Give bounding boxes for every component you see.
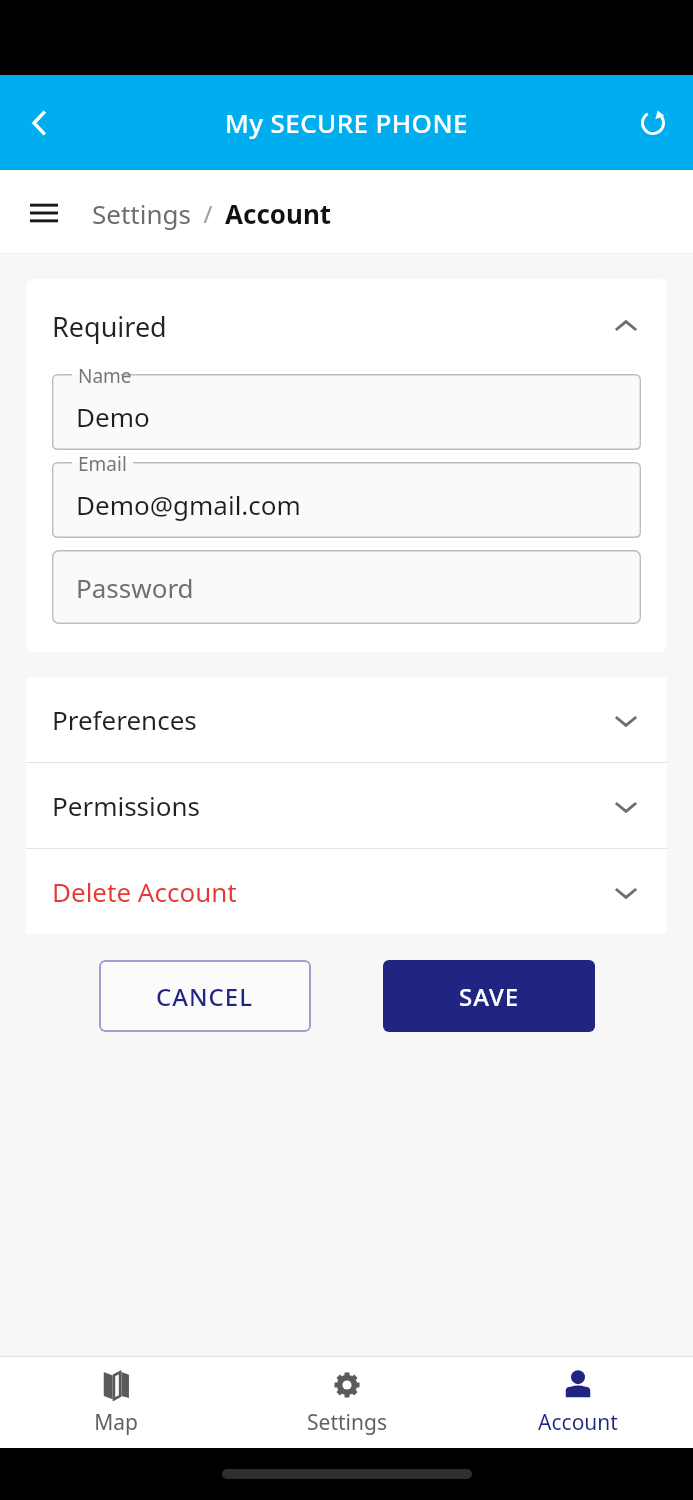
staticText: Permissions bbox=[52, 788, 611, 823]
staticText: Password bbox=[76, 570, 194, 605]
staticText: Settings bbox=[92, 196, 191, 231]
staticText: / bbox=[191, 197, 225, 230]
button[interactable]: Settings bbox=[231, 1356, 462, 1448]
staticText: Name bbox=[78, 363, 132, 389]
button[interactable]: CANCEL bbox=[99, 960, 311, 1032]
staticText: Account bbox=[225, 196, 332, 231]
button[interactable]: Back bbox=[14, 97, 66, 149]
button[interactable]: Password bbox=[52, 550, 641, 624]
staticText: SAVE bbox=[459, 980, 520, 1013]
button[interactable]: Delete Account bbox=[26, 849, 667, 934]
button[interactable]: Menu bbox=[20, 189, 68, 237]
staticText: Account bbox=[538, 1408, 618, 1437]
button[interactable]: Refresh bbox=[627, 97, 679, 149]
staticText: Map bbox=[94, 1408, 138, 1437]
staticText: Email bbox=[78, 451, 127, 477]
button[interactable]: Required bbox=[26, 279, 667, 374]
staticText: Settings bbox=[307, 1408, 387, 1437]
staticText: Preferences bbox=[52, 702, 611, 737]
button[interactable]: Email bbox=[52, 462, 641, 538]
button[interactable]: Account bbox=[462, 1356, 693, 1448]
button[interactable]: SAVE bbox=[383, 960, 595, 1032]
button[interactable]: Settings bbox=[92, 196, 332, 231]
button[interactable]: Map bbox=[0, 1356, 231, 1448]
button[interactable]: Preferences bbox=[26, 677, 667, 762]
staticText: Required bbox=[52, 308, 611, 345]
button[interactable]: Name bbox=[52, 374, 641, 450]
staticText: Demo bbox=[76, 399, 150, 434]
button[interactable]: Permissions bbox=[26, 763, 667, 848]
staticText: CANCEL bbox=[156, 980, 254, 1013]
staticText: Demo@gmail.com bbox=[76, 487, 301, 522]
staticText: Delete Account bbox=[52, 874, 611, 909]
staticText: My SECURE PHONE bbox=[225, 105, 468, 140]
